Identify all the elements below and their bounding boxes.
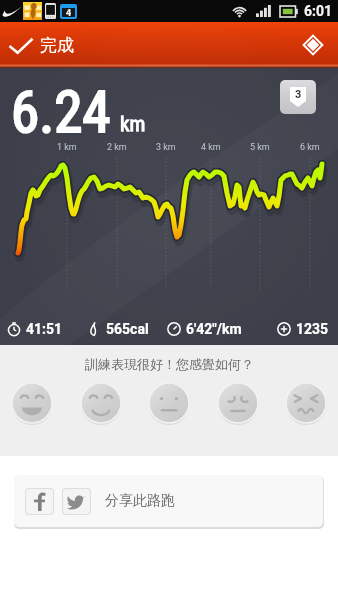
button[interactable]: Share on Twitter — [62, 488, 91, 515]
staticText: 完成 — [40, 35, 74, 56]
staticText: 1235 — [296, 321, 329, 337]
staticText: 4 — [66, 8, 72, 17]
button[interactable]: Tired — [215, 380, 261, 426]
staticText: 6.24 — [11, 79, 111, 146]
staticText: 565cal — [106, 321, 149, 337]
button[interactable]: Good — [78, 380, 124, 426]
button[interactable]: 完成 — [0, 29, 88, 62]
button[interactable]: Bad — [283, 380, 329, 426]
staticText: 41:51 — [26, 321, 63, 337]
staticText: 5 km — [250, 142, 270, 153]
staticText: 訓練表現很好！您感覺如何？ — [85, 356, 254, 372]
staticText: 6:01 — [304, 3, 333, 19]
button[interactable]: Okay — [146, 380, 192, 426]
staticText: 1 km — [57, 142, 77, 153]
staticText: 3 — [295, 88, 302, 101]
button[interactable]: Achievements — [280, 80, 316, 114]
staticText: km — [120, 112, 146, 137]
button[interactable]: Great — [9, 380, 55, 426]
staticText: 6'42"/km — [186, 321, 242, 337]
button[interactable]: Tag run — [290, 22, 336, 68]
staticText: 4 km — [201, 142, 221, 153]
staticText: 6 km — [300, 142, 320, 153]
button[interactable]: Share on Facebook — [14, 475, 323, 527]
staticText: 2 km — [107, 142, 127, 153]
staticText: 分享此路跑 — [105, 492, 175, 510]
staticText: 3 km — [156, 142, 176, 153]
button[interactable]: Share on Facebook — [25, 488, 54, 515]
